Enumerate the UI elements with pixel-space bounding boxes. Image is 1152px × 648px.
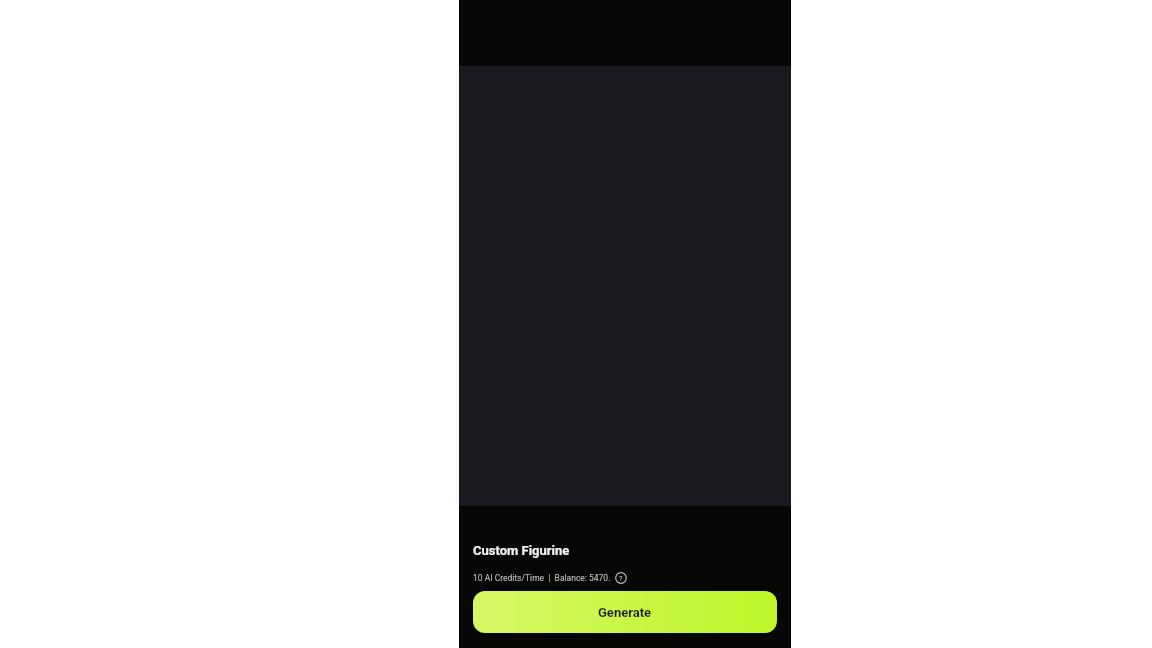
staticText: Custom Figurine	[473, 543, 570, 558]
staticText: ?	[619, 574, 623, 583]
button[interactable]: Generate	[473, 591, 777, 633]
staticText: Generate	[598, 605, 652, 620]
staticText: 10 AI Credits/Time | Balance: 5470.	[473, 573, 611, 583]
button[interactable]: Credits information	[615, 572, 627, 584]
